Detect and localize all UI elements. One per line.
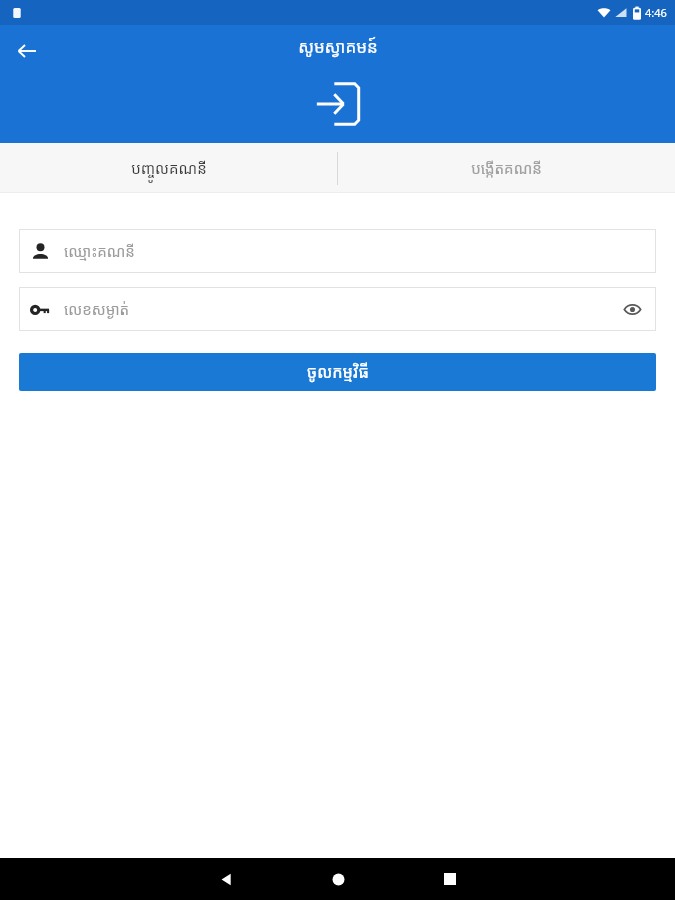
button[interactable]: Recent apps: [422, 858, 478, 900]
staticText: សូមស្វាគមន៍: [298, 35, 378, 58]
staticText: ចូលកម្មវិធី: [307, 361, 369, 383]
button[interactable]: Home: [310, 858, 366, 900]
staticText: បញ្ចូលគណនី: [131, 158, 207, 178]
button[interactable]: Show password: [616, 293, 648, 325]
button[interactable]: Back: [6, 30, 48, 72]
button[interactable]: លេខសម្ងាត់: [19, 287, 656, 331]
staticText: ឈ្មោះគណនី: [64, 241, 135, 261]
button[interactable]: ចូលកម្មវិធី: [19, 353, 656, 391]
button[interactable]: Back: [198, 858, 254, 900]
staticText: 4:46: [645, 5, 667, 20]
staticText: បង្កើតគណនី: [471, 158, 542, 178]
staticText: លេខសម្ងាត់: [64, 299, 130, 319]
button[interactable]: បញ្ចូលគណនី: [0, 143, 337, 193]
button[interactable]: បង្កើតគណនី: [337, 143, 675, 193]
button[interactable]: ឈ្មោះគណនី: [19, 229, 656, 273]
